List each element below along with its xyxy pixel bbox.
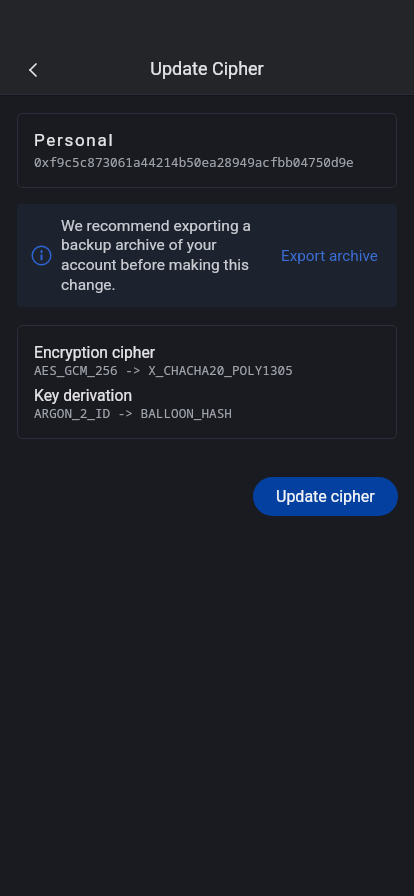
staticText: 0xf9c5c873061a44214b50ea28949acfbb04750d…	[34, 153, 354, 170]
button[interactable]: Personal	[17, 113, 397, 188]
staticText: ARGON_2_ID -> BALLOON_HASH	[34, 404, 232, 421]
staticText: Update Cipher	[150, 58, 264, 79]
button[interactable]: Export archive	[279, 241, 380, 271]
staticText: Key derivation	[34, 386, 133, 404]
staticText: We recommend exporting a backup archive …	[61, 217, 256, 294]
button[interactable]: Back	[15, 52, 51, 88]
staticText: Personal	[34, 130, 115, 150]
button[interactable]: Encryption cipher	[17, 325, 397, 439]
staticText: Update cipher	[276, 487, 375, 506]
staticText: Export archive	[281, 247, 378, 265]
button[interactable]: Update cipher	[253, 477, 398, 516]
staticText: Encryption cipher	[34, 343, 156, 361]
staticText: AES_GCM_256 -> X_CHACHA20_POLY1305	[34, 361, 293, 378]
